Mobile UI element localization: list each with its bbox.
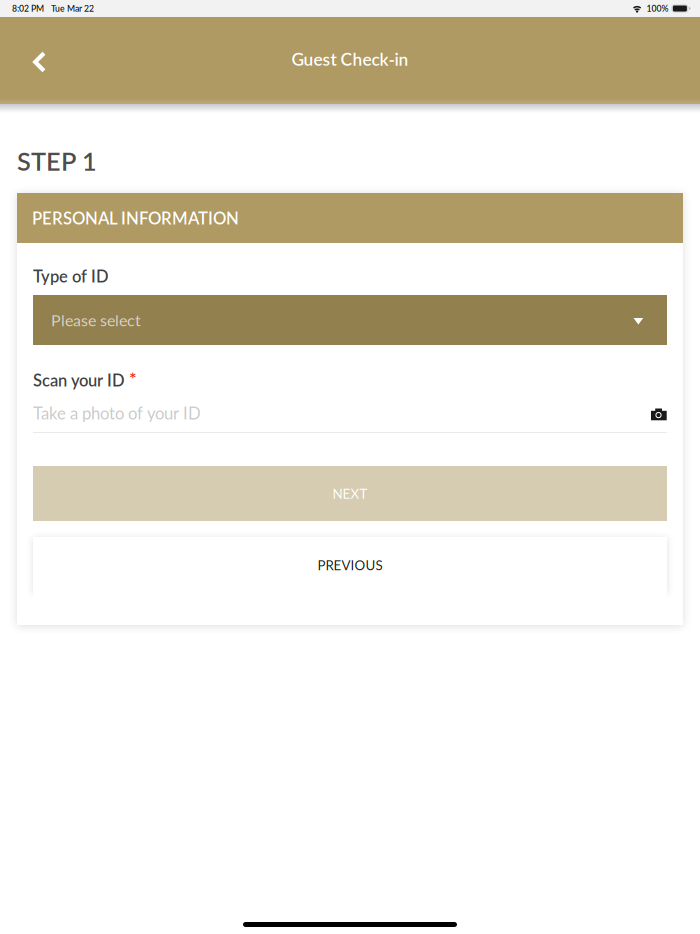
staticText: 100% (646, 3, 668, 14)
button[interactable]: Type of ID (33, 295, 667, 345)
staticText: PERSONAL INFORMATION (32, 208, 239, 228)
staticText: * (129, 368, 137, 389)
staticText: PREVIOUS (317, 557, 382, 573)
staticText: Guest Check-in (291, 49, 408, 69)
staticText: Scan your ID (33, 370, 125, 390)
staticText: Please select (51, 310, 141, 330)
button[interactable]: Take a photo of your ID (33, 399, 667, 433)
staticText: Type of ID (33, 266, 109, 286)
staticText: 8:02 PM (12, 3, 44, 14)
staticText: Take a photo of your ID (33, 403, 201, 423)
staticText: Tue Mar 22 (51, 3, 94, 14)
button[interactable]: Back (0, 31, 66, 87)
staticText: STEP 1 (17, 146, 97, 176)
button[interactable]: NEXT (33, 466, 667, 521)
button[interactable]: PREVIOUS (33, 537, 667, 593)
staticText: NEXT (332, 485, 367, 501)
